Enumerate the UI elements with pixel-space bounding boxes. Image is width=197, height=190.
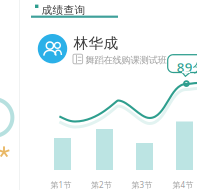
staticText: 林华成	[73, 34, 118, 52]
staticText: 舞蹈在线购课测试班	[85, 54, 166, 66]
staticText: 成绩查询	[41, 4, 85, 17]
staticText: 第4节	[172, 179, 193, 190]
staticText: 第3节	[131, 179, 152, 190]
staticText: 第1节	[50, 179, 71, 190]
staticText: 第2节	[91, 179, 112, 190]
staticText: 89分	[177, 58, 197, 76]
